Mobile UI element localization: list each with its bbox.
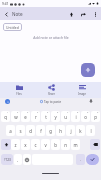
- staticText: 9: [87, 111, 89, 114]
- button[interactable]: l: [86, 125, 95, 136]
- staticText: p: [94, 114, 97, 120]
- button[interactable]: ,: [14, 154, 22, 165]
- button[interactable]: Untitled: [3, 23, 22, 31]
- staticText: g: [49, 128, 52, 134]
- staticText: b: [54, 142, 57, 148]
- button[interactable]: u: [61, 111, 70, 122]
- button[interactable]: y: [51, 111, 60, 122]
- staticText: .: [80, 157, 82, 163]
- button[interactable]: p: [91, 111, 100, 122]
- staticText: f: [40, 128, 42, 134]
- button[interactable]: v: [41, 139, 50, 150]
- button[interactable]: ?123: [1, 154, 13, 165]
- button[interactable]: b: [51, 139, 60, 150]
- staticText: r: [35, 114, 37, 120]
- button[interactable]: s: [16, 125, 25, 136]
- button[interactable]: k: [76, 125, 85, 136]
- button[interactable]: .: [76, 154, 85, 165]
- staticText: q: [4, 114, 7, 120]
- staticText: 3: [27, 111, 29, 114]
- button[interactable]: z: [11, 139, 20, 150]
- staticText: u: [64, 114, 67, 120]
- button[interactable]: Backspace: [90, 139, 100, 150]
- staticText: ?123: [4, 158, 11, 162]
- staticText: x: [24, 142, 27, 148]
- staticText: e: [24, 114, 27, 120]
- button[interactable]: Shift: [1, 139, 11, 150]
- staticText: 5: [47, 111, 49, 114]
- button[interactable]: Enter: [86, 154, 99, 165]
- button[interactable]: d: [26, 125, 35, 136]
- staticText: 8: [77, 111, 79, 114]
- button[interactable]: c: [31, 139, 40, 150]
- staticText: s: [19, 128, 22, 134]
- staticText: 1: [7, 111, 9, 114]
- staticText: v: [44, 142, 47, 148]
- staticText: l: [90, 128, 92, 134]
- button[interactable]: Gboard: [5, 99, 10, 104]
- button[interactable]: f: [36, 125, 45, 136]
- button[interactable]: Emoji: [23, 154, 31, 165]
- button[interactable]: More options: [89, 8, 101, 20]
- staticText: Untitled: [6, 25, 19, 30]
- staticText: m: [73, 142, 78, 148]
- button[interactable]: m: [71, 139, 80, 150]
- staticText: Files: [16, 92, 22, 96]
- staticText: t: [45, 114, 47, 120]
- button[interactable]: Image: [70, 83, 94, 97]
- button[interactable]: t: [41, 111, 50, 122]
- button[interactable]: Back: [0, 8, 12, 20]
- staticText: 7: [67, 111, 69, 114]
- button[interactable]: Voice input: [88, 98, 94, 104]
- staticText: o: [84, 114, 87, 120]
- button[interactable]: e: [21, 111, 30, 122]
- staticText: d: [29, 128, 32, 134]
- staticText: k: [79, 128, 82, 134]
- staticText: Share: [48, 92, 55, 96]
- button[interactable]: h: [56, 125, 65, 136]
- button[interactable]: n: [61, 139, 70, 150]
- button[interactable]: w: [11, 111, 20, 122]
- staticText: Image: [78, 92, 86, 96]
- button[interactable]: a: [6, 125, 15, 136]
- staticText: n: [64, 142, 67, 148]
- button[interactable]: Redo: [77, 8, 89, 20]
- staticText: i: [75, 114, 77, 120]
- button[interactable]: x: [21, 139, 30, 150]
- staticText: ,: [17, 157, 19, 163]
- staticText: 2: [17, 111, 19, 114]
- button[interactable]: o: [81, 111, 90, 122]
- staticText: 0: [97, 111, 99, 114]
- staticText: a: [9, 128, 12, 134]
- staticText: 4: [37, 111, 39, 114]
- button[interactable]: Pin: [65, 8, 77, 20]
- button[interactable]: g: [46, 125, 55, 136]
- staticText: h: [59, 128, 62, 134]
- staticText: 9:41: [2, 2, 9, 6]
- staticText: c: [34, 142, 37, 148]
- staticText: 6: [57, 111, 59, 114]
- staticText: Note: [12, 11, 23, 17]
- button[interactable]: Add: [81, 63, 95, 77]
- button[interactable]: j: [66, 125, 75, 136]
- staticText: y: [54, 114, 57, 120]
- staticText: z: [14, 142, 17, 148]
- staticText: w: [14, 114, 18, 120]
- button[interactable]: q: [1, 111, 10, 122]
- staticText: j: [70, 128, 72, 134]
- button[interactable]: Share: [39, 83, 63, 97]
- button[interactable]: i: [71, 111, 80, 122]
- staticText: Tap to paste: [44, 100, 62, 104]
- staticText: Add note or attach file: [33, 35, 69, 40]
- button[interactable]: r: [31, 111, 40, 122]
- button[interactable]: Files: [7, 83, 31, 97]
